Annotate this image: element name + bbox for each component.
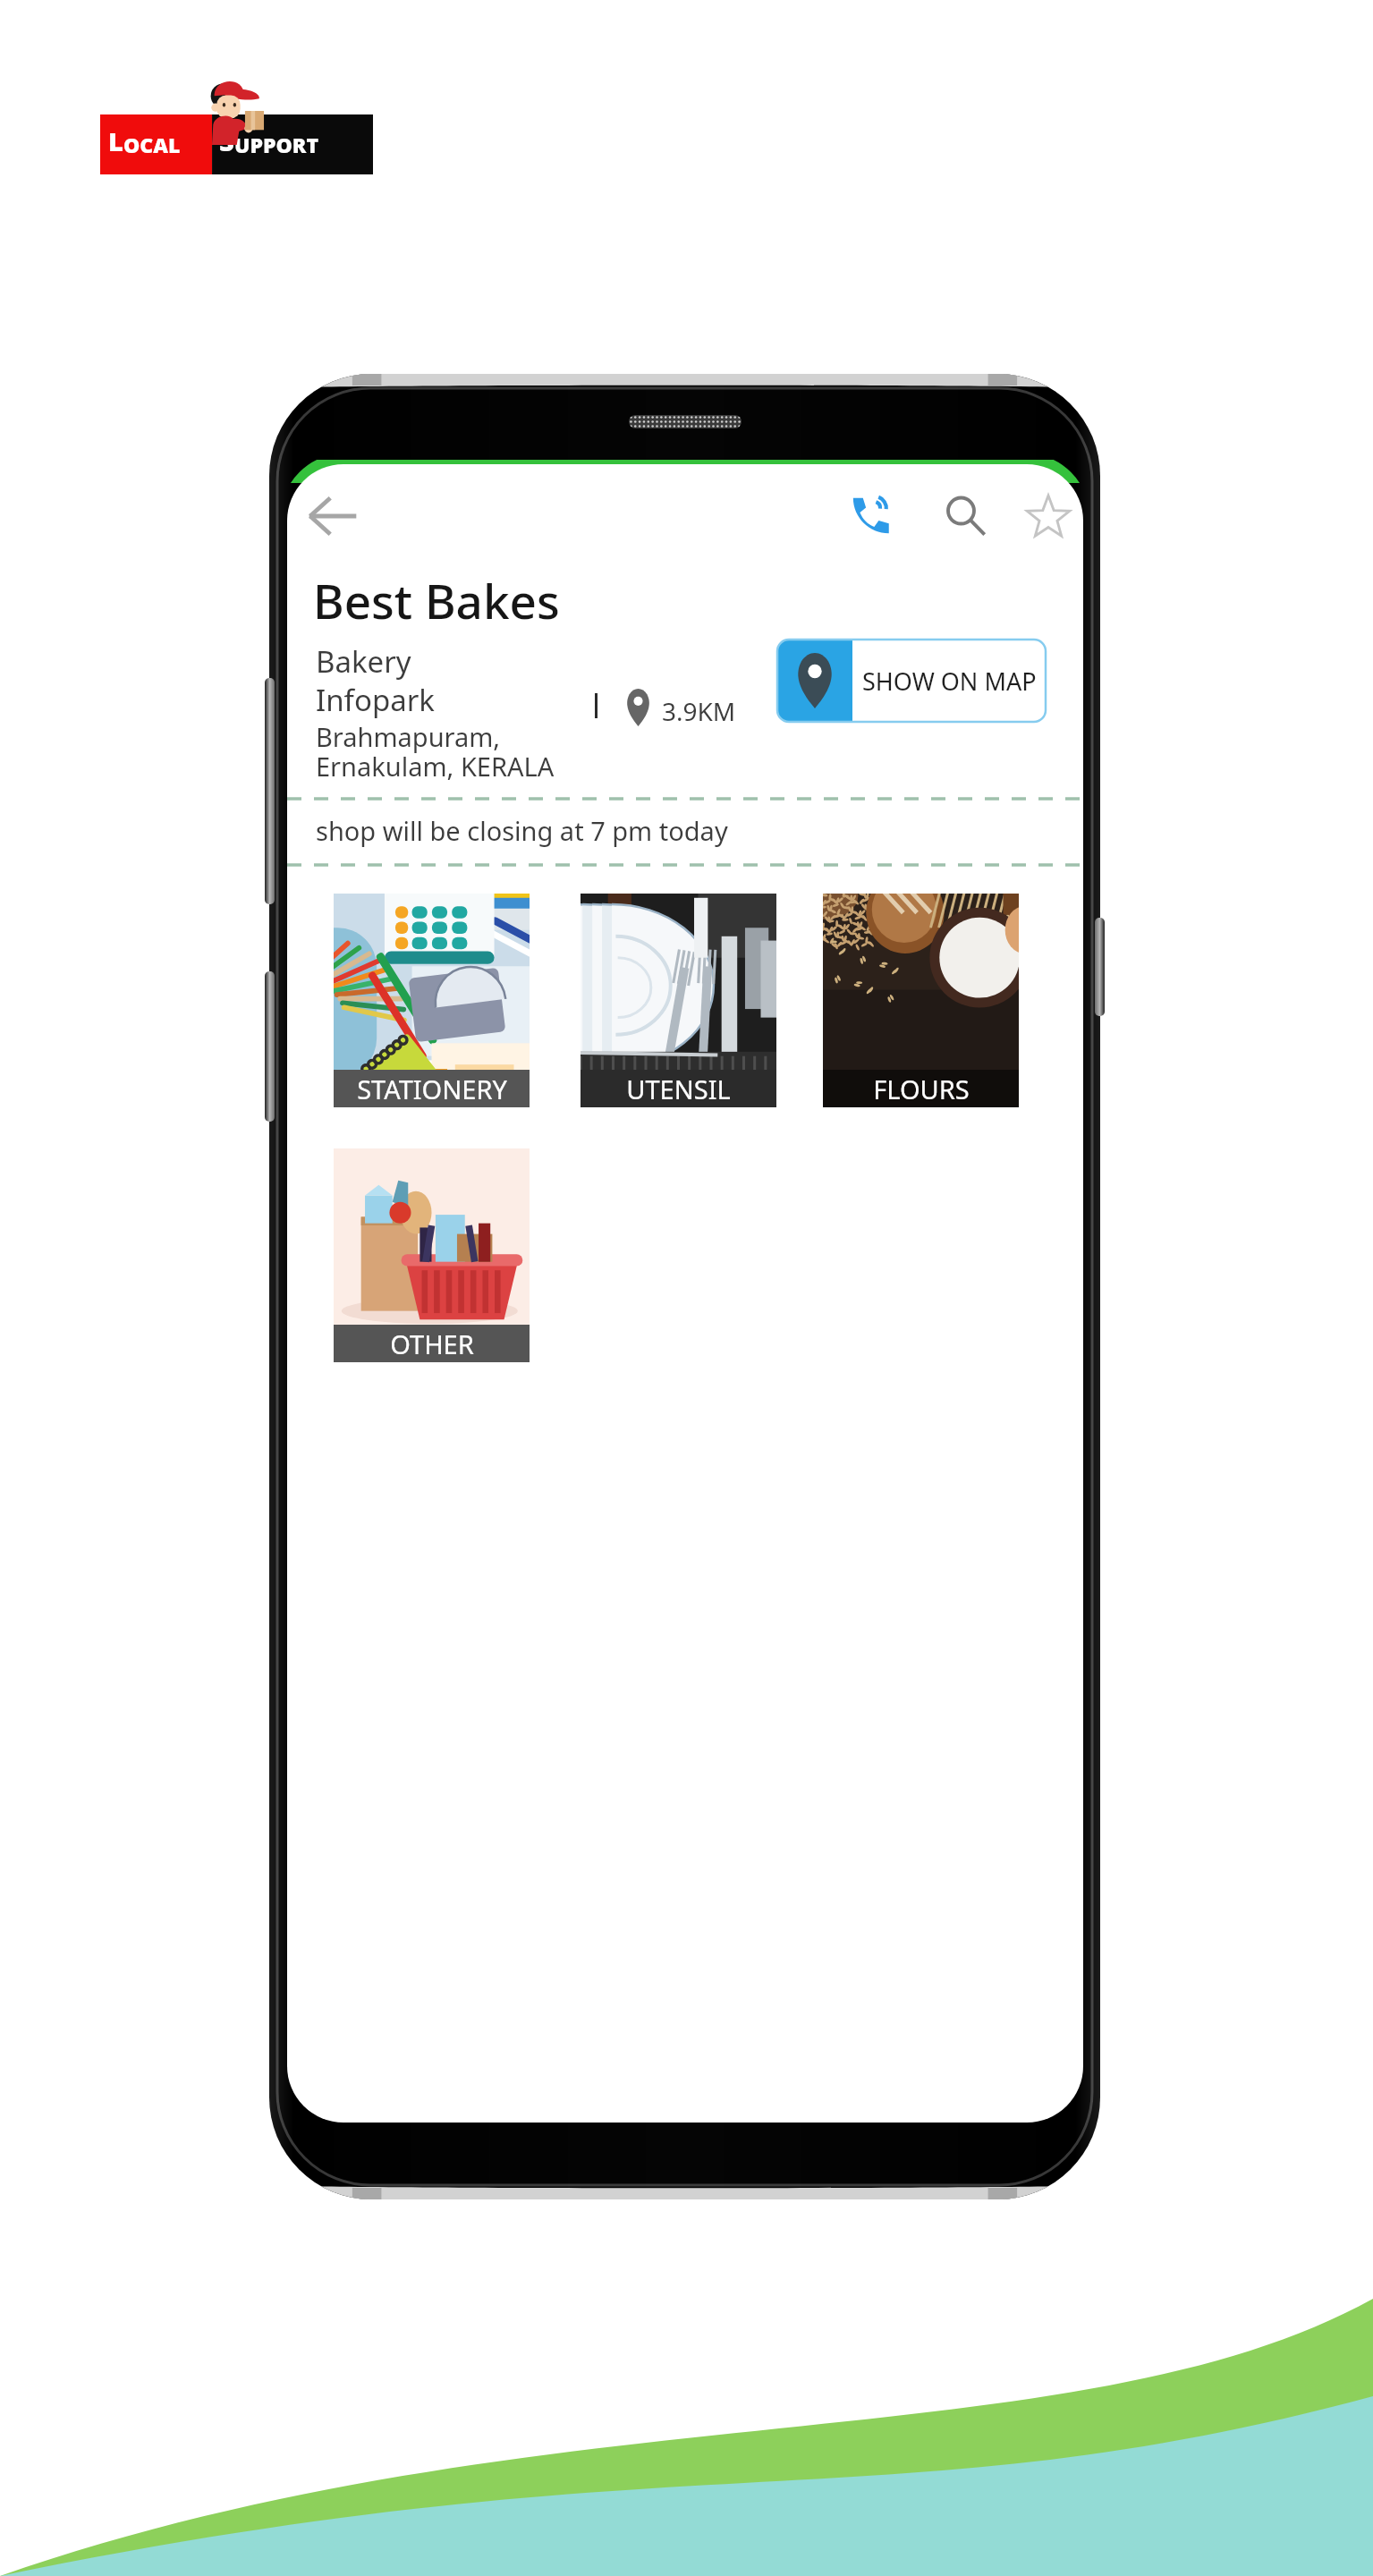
staticText: FLOURS bbox=[873, 1072, 970, 1106]
staticText: 3.9KM bbox=[662, 694, 736, 728]
staticText: OTHER bbox=[390, 1326, 474, 1361]
staticText: OCAL bbox=[123, 131, 181, 158]
button[interactable]: UTENSIL bbox=[581, 894, 776, 1107]
staticText: Brahmapuram, bbox=[316, 719, 501, 754]
button[interactable]: OTHER bbox=[334, 1148, 530, 1362]
staticText: S bbox=[219, 123, 234, 158]
staticText: Infopark bbox=[316, 680, 435, 720]
staticText: STATIONERY bbox=[357, 1072, 507, 1106]
staticText: Bakery bbox=[316, 641, 411, 682]
staticText: Ernakulam, KERALA bbox=[316, 749, 555, 784]
button[interactable]: SHOW ON MAP bbox=[777, 640, 1046, 722]
staticText: L bbox=[108, 123, 123, 158]
button[interactable]: FLOURS bbox=[823, 894, 1019, 1107]
button[interactable]: STATIONERY bbox=[334, 894, 530, 1107]
button[interactable]: Back bbox=[295, 479, 370, 554]
staticText: SHOW ON MAP bbox=[862, 665, 1037, 698]
staticText: UPPORT bbox=[234, 131, 318, 158]
staticText: Best Bakes bbox=[313, 568, 560, 632]
button[interactable]: Search bbox=[928, 479, 1004, 554]
button[interactable]: Call bbox=[834, 479, 909, 554]
staticText: shop will be closing at 7 pm today bbox=[316, 813, 728, 848]
button[interactable]: Favourite bbox=[1011, 479, 1083, 554]
staticText: UTENSIL bbox=[626, 1072, 731, 1106]
